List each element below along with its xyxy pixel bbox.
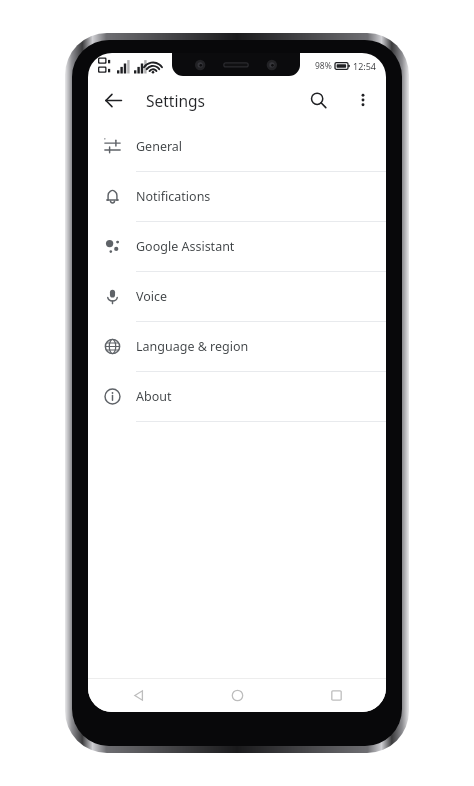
- button[interactable]: More options: [345, 82, 381, 118]
- button[interactable]: Notifications: [88, 172, 386, 221]
- button[interactable]: About: [88, 372, 386, 421]
- staticText: Google Assistant: [136, 238, 235, 255]
- button[interactable]: Back: [88, 679, 188, 712]
- staticText: 98%: [315, 60, 332, 72]
- staticText: Language & region: [136, 338, 249, 355]
- staticText: General: [136, 138, 183, 155]
- staticText: About: [136, 388, 172, 405]
- button[interactable]: Voice: [88, 272, 386, 321]
- button[interactable]: General: [88, 122, 386, 171]
- button[interactable]: Recent apps: [287, 679, 386, 712]
- button[interactable]: Search: [300, 82, 336, 118]
- button[interactable]: Language & region: [88, 322, 386, 371]
- staticText: Voice: [136, 288, 168, 305]
- button[interactable]: Home: [188, 679, 287, 712]
- staticText: Settings: [146, 90, 205, 111]
- staticText: Notifications: [136, 188, 211, 205]
- button[interactable]: Google Assistant: [88, 222, 386, 271]
- button[interactable]: Back: [95, 82, 131, 118]
- staticText: 12:54: [353, 60, 377, 72]
